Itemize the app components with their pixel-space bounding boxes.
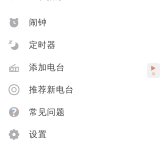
- button[interactable]: 定时器: [0, 34, 160, 56]
- staticText: 添加电台: [29, 62, 65, 73]
- button[interactable]: Now playing: [147, 63, 160, 78]
- staticText: 正在播放: [29, 0, 65, 2]
- button[interactable]: ?: [0, 101, 160, 123]
- staticText: 闹钟: [29, 17, 47, 28]
- button[interactable]: 设置: [0, 123, 160, 146]
- staticText: ?: [11, 105, 16, 119]
- staticText: 设置: [29, 129, 47, 140]
- staticText: 常见问题: [29, 107, 65, 117]
- staticText: 定时器: [29, 39, 56, 50]
- button[interactable]: 闹钟: [0, 11, 160, 34]
- staticText: 推荐新电台: [29, 84, 74, 95]
- button[interactable]: 添加电台: [0, 56, 160, 78]
- button[interactable]: 推荐新电台: [0, 78, 160, 101]
